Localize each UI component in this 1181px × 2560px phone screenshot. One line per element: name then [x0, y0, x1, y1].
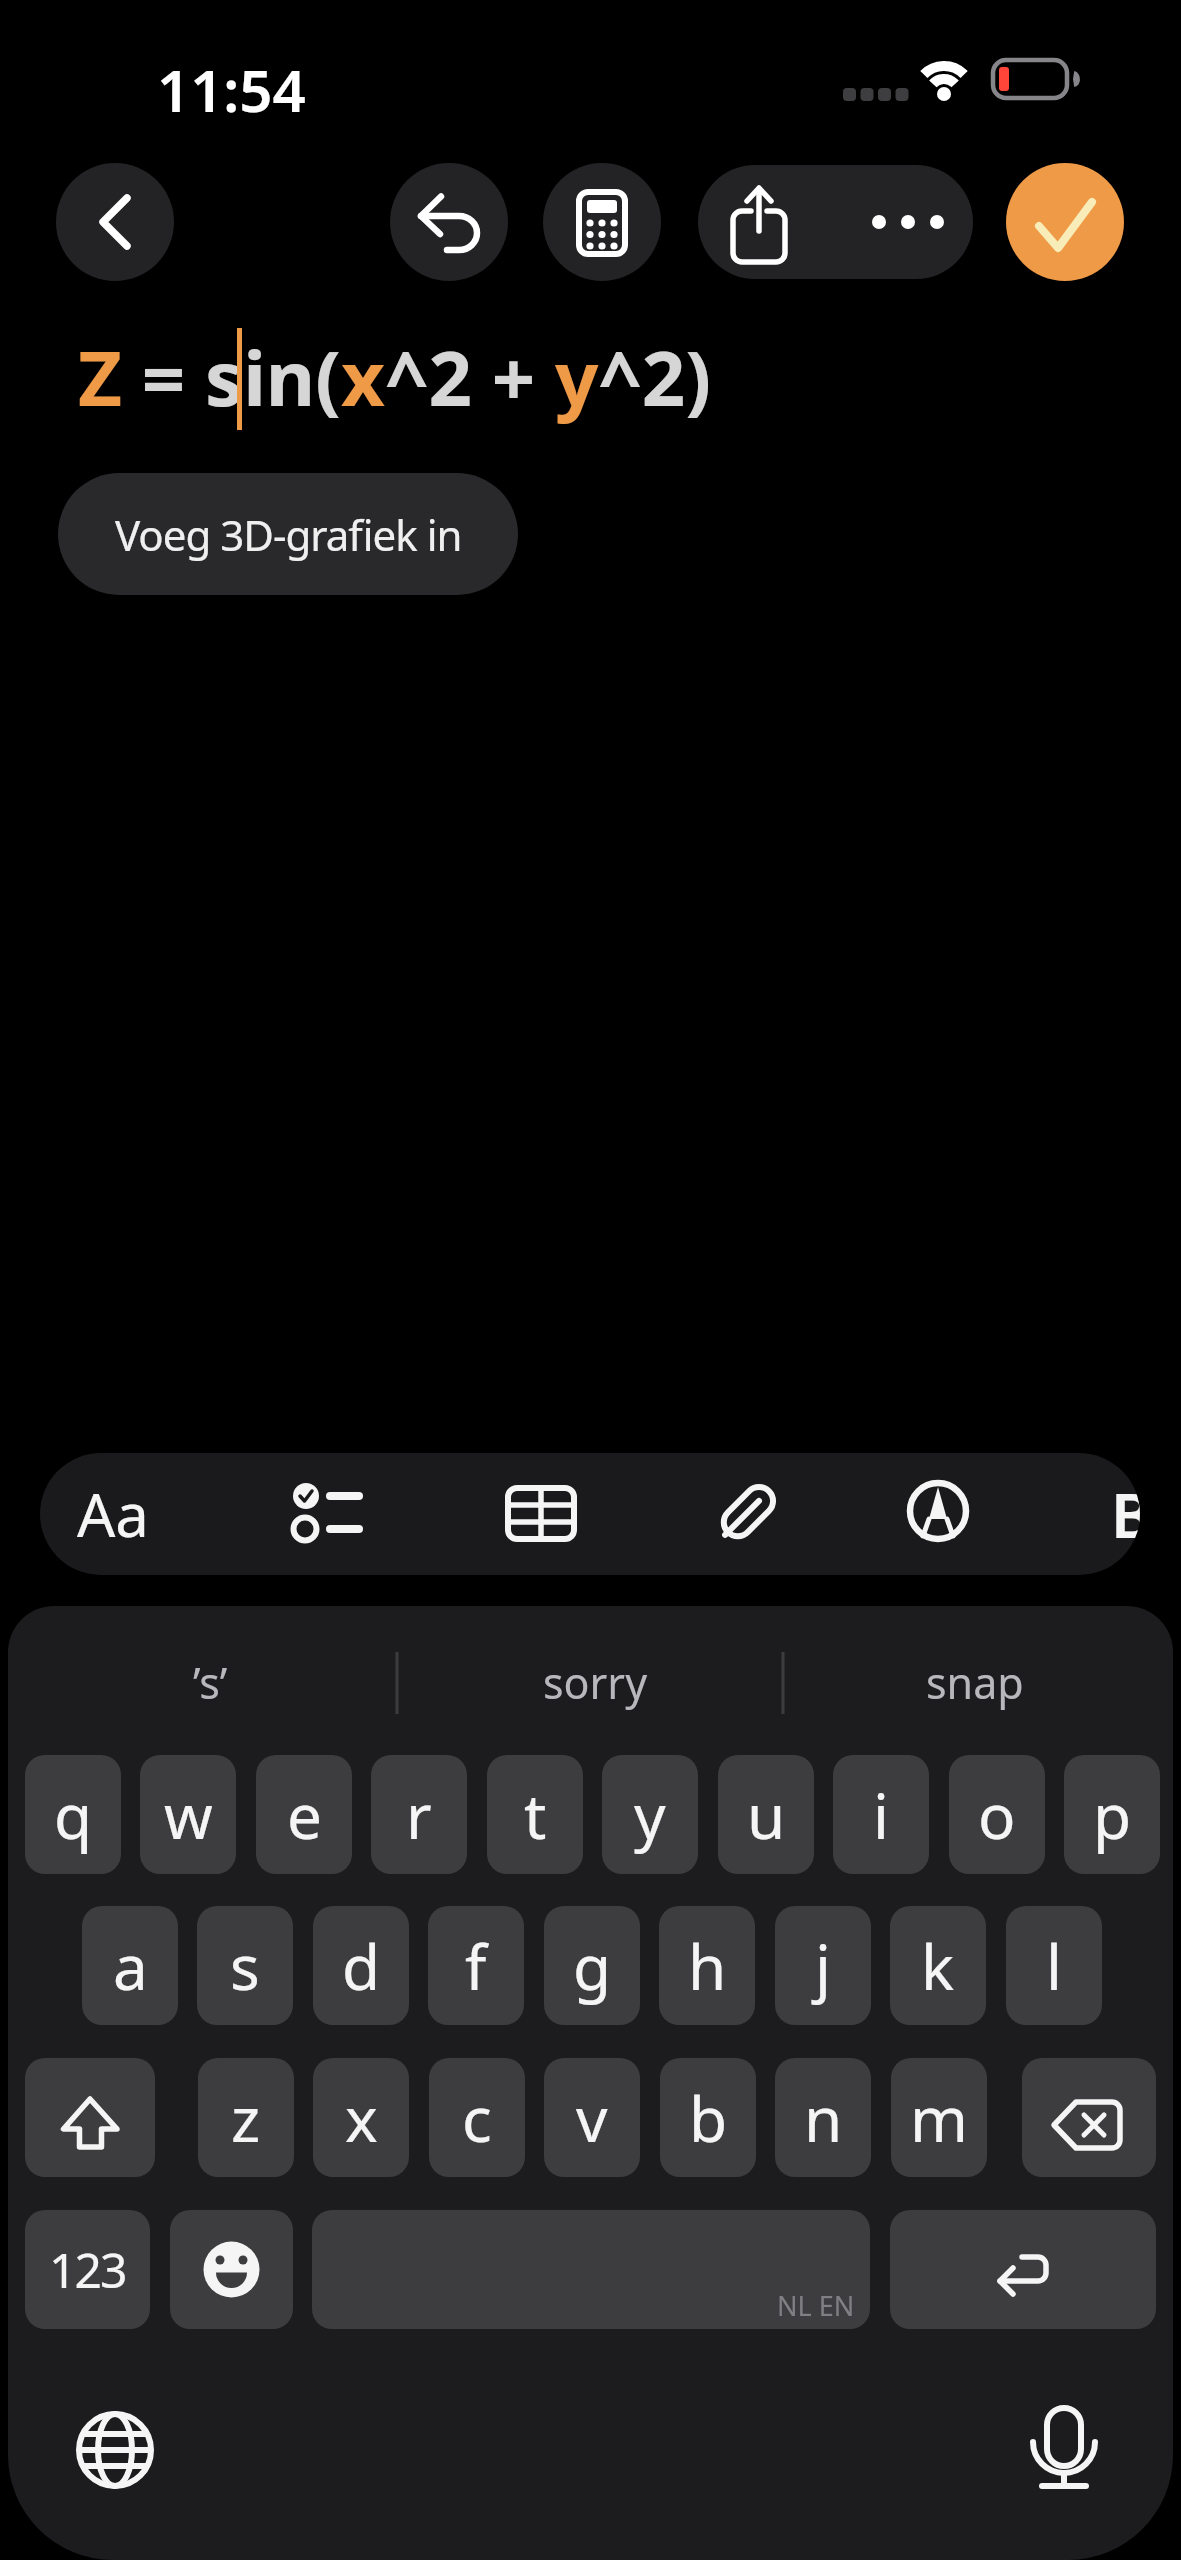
button[interactable]: NL EN: [312, 2210, 870, 2329]
staticText: 11:54: [157, 50, 306, 114]
button[interactable]: x: [313, 2058, 409, 2177]
staticText: r: [406, 1773, 432, 1857]
staticText: v: [576, 2076, 608, 2160]
staticText: y: [634, 1773, 666, 1857]
button[interactable]: Voeg 3D-grafiek in: [58, 473, 518, 595]
button[interactable]: [40, 1453, 1140, 1575]
button[interactable]: Aa: [68, 1465, 158, 1563]
staticText: l: [1046, 1924, 1062, 2008]
button[interactable]: [543, 163, 661, 281]
button[interactable]: ’s’: [100, 1648, 320, 1716]
button[interactable]: sorry: [480, 1648, 710, 1716]
button[interactable]: v: [544, 2058, 640, 2177]
button[interactable]: o: [949, 1755, 1045, 1874]
button[interactable]: [70, 2405, 160, 2495]
button[interactable]: y: [602, 1755, 698, 1874]
staticText: q: [54, 1773, 93, 1857]
button[interactable]: t: [487, 1755, 583, 1874]
staticText: Z = sin(x^2 + y^2): [78, 325, 712, 429]
button[interactable]: snap: [860, 1648, 1090, 1716]
button[interactable]: p: [1064, 1755, 1160, 1874]
staticText: f: [465, 1924, 487, 2008]
button[interactable]: [698, 165, 973, 279]
staticText: j: [815, 1924, 831, 2008]
staticText: k: [921, 1924, 955, 2008]
button[interactable]: l: [1006, 1906, 1102, 2025]
staticText: z: [231, 2076, 261, 2160]
staticText: b: [689, 2076, 728, 2160]
button[interactable]: s: [197, 1906, 293, 2025]
staticText: o: [978, 1773, 1016, 1857]
button[interactable]: e: [256, 1755, 352, 1874]
button[interactable]: z: [198, 2058, 294, 2177]
staticText: i: [873, 1773, 889, 1857]
button[interactable]: n: [775, 2058, 871, 2177]
staticText: w: [164, 1773, 213, 1857]
button[interactable]: [1022, 2058, 1156, 2177]
button[interactable]: g: [544, 1906, 640, 2025]
staticText: NL EN: [777, 2287, 855, 2324]
staticText: sorry: [543, 1653, 648, 1712]
button[interactable]: 123: [25, 2210, 150, 2329]
button[interactable]: [170, 2210, 293, 2329]
staticText: d: [342, 1924, 381, 2008]
button[interactable]: [890, 2210, 1156, 2329]
button[interactable]: [25, 2058, 155, 2177]
button[interactable]: c: [429, 2058, 525, 2177]
button[interactable]: r: [371, 1755, 467, 1874]
button[interactable]: u: [718, 1755, 814, 1874]
staticText: p: [1093, 1773, 1132, 1857]
staticText: Voeg 3D-grafiek in: [115, 506, 462, 563]
button[interactable]: i: [833, 1755, 929, 1874]
staticText: g: [573, 1924, 612, 2008]
button[interactable]: [56, 163, 174, 281]
button[interactable]: b: [660, 2058, 756, 2177]
button[interactable]: d: [313, 1906, 409, 2025]
staticText: a: [113, 1924, 148, 2008]
button[interactable]: [1006, 163, 1124, 281]
button[interactable]: w: [140, 1755, 236, 1874]
staticText: s: [230, 1924, 260, 2008]
button[interactable]: a: [82, 1906, 178, 2025]
staticText: 123: [49, 2237, 126, 2302]
staticText: Aa: [77, 1473, 149, 1555]
button[interactable]: [390, 163, 508, 281]
button[interactable]: q: [25, 1755, 121, 1874]
staticText: snap: [926, 1653, 1024, 1712]
staticText: ’s’: [193, 1653, 228, 1712]
button[interactable]: h: [659, 1906, 755, 2025]
button[interactable]: f: [428, 1906, 524, 2025]
staticText: B: [1111, 1472, 1140, 1556]
button[interactable]: j: [775, 1906, 871, 2025]
button[interactable]: [1020, 2400, 1110, 2510]
staticText: e: [287, 1773, 322, 1857]
staticText: n: [804, 2076, 843, 2160]
staticText: t: [524, 1773, 547, 1857]
button[interactable]: k: [890, 1906, 986, 2025]
button[interactable]: m: [891, 2058, 987, 2177]
staticText: c: [462, 2076, 492, 2160]
staticText: x: [345, 2076, 378, 2160]
staticText: u: [747, 1773, 786, 1857]
staticText: m: [910, 2076, 968, 2160]
staticText: h: [688, 1924, 727, 2008]
